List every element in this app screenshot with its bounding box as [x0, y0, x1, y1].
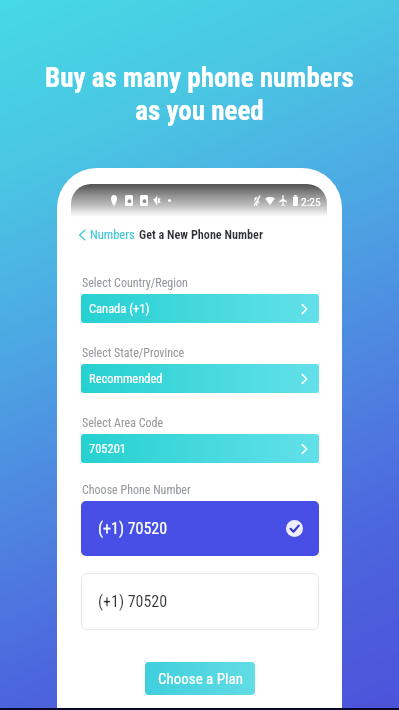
staticText: 705201	[89, 441, 127, 456]
button[interactable]: (+1) 70520	[81, 501, 319, 556]
staticText: (+1) 70520	[98, 519, 168, 538]
staticText: Recommended	[89, 371, 163, 386]
staticText: Buy as many phone numbers	[45, 62, 354, 94]
button[interactable]: Canada (+1)	[81, 294, 319, 323]
staticText: (+1) 70520	[98, 592, 168, 611]
button[interactable]: (+1) 70520	[81, 573, 319, 630]
staticText: Select State/Province	[82, 346, 185, 360]
button[interactable]: Recommended	[81, 364, 319, 393]
button[interactable]: 705201	[81, 434, 319, 463]
staticText: Numbers	[90, 227, 135, 242]
staticText: Choose a Plan	[158, 670, 243, 688]
staticText: Get a New Phone Number	[139, 228, 263, 242]
button[interactable]: Back to Numbers	[78, 227, 135, 242]
button[interactable]: Choose a Plan	[145, 662, 255, 695]
staticText: Select Area Code	[82, 416, 164, 430]
staticText: as you need	[135, 95, 264, 127]
staticText: 2:25	[301, 195, 321, 208]
staticText: Choose Phone Number	[82, 483, 191, 497]
staticText: Select Country/Region	[82, 276, 188, 290]
staticText: Canada (+1)	[89, 301, 150, 316]
